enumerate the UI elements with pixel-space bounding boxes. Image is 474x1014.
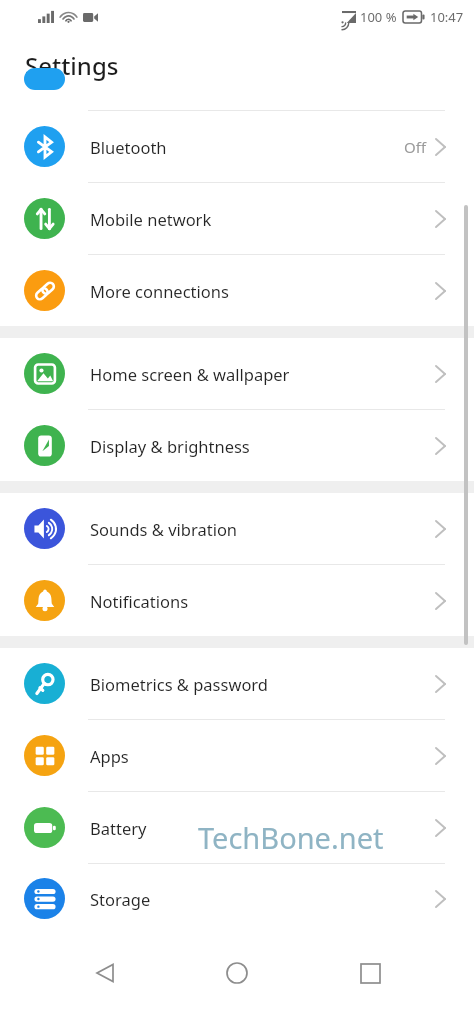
- button[interactable]: Notifications: [0, 565, 474, 636]
- staticText: Storage: [90, 888, 151, 910]
- button[interactable]: More connections: [0, 255, 474, 326]
- staticText: 10:47: [430, 8, 464, 26]
- staticText: Notifications: [90, 590, 189, 612]
- button[interactable]: Back: [77, 945, 133, 1001]
- staticText: 100 %: [360, 8, 397, 26]
- button[interactable]: Home: [209, 945, 265, 1001]
- button[interactable]: Storage: [0, 864, 474, 933]
- staticText: Off: [404, 137, 427, 157]
- button[interactable]: Home screen & wallpaper: [0, 338, 474, 409]
- button[interactable]: Biometrics & password: [0, 648, 474, 719]
- staticText: Apps: [90, 745, 129, 767]
- staticText: Bluetooth: [90, 136, 167, 158]
- staticText: More connections: [90, 280, 229, 302]
- button[interactable]: Display & brightness: [0, 410, 474, 481]
- button[interactable]: Sounds & vibration: [0, 493, 474, 564]
- button[interactable]: Apps: [0, 720, 474, 791]
- staticText: Battery: [90, 817, 147, 839]
- button[interactable]: Battery: [0, 792, 474, 863]
- staticText: Home screen & wallpaper: [90, 363, 290, 385]
- staticText: TechBone.net: [198, 818, 384, 857]
- button[interactable]: Mobile network: [0, 183, 474, 254]
- button[interactable]: Bluetooth: [0, 111, 474, 182]
- staticText: Sounds & vibration: [90, 518, 238, 540]
- staticText: Settings: [25, 49, 119, 82]
- button[interactable]: Recent apps: [342, 945, 398, 1001]
- staticText: Mobile network: [90, 208, 212, 230]
- staticText: Display & brightness: [90, 435, 250, 457]
- staticText: Biometrics & password: [90, 673, 269, 695]
